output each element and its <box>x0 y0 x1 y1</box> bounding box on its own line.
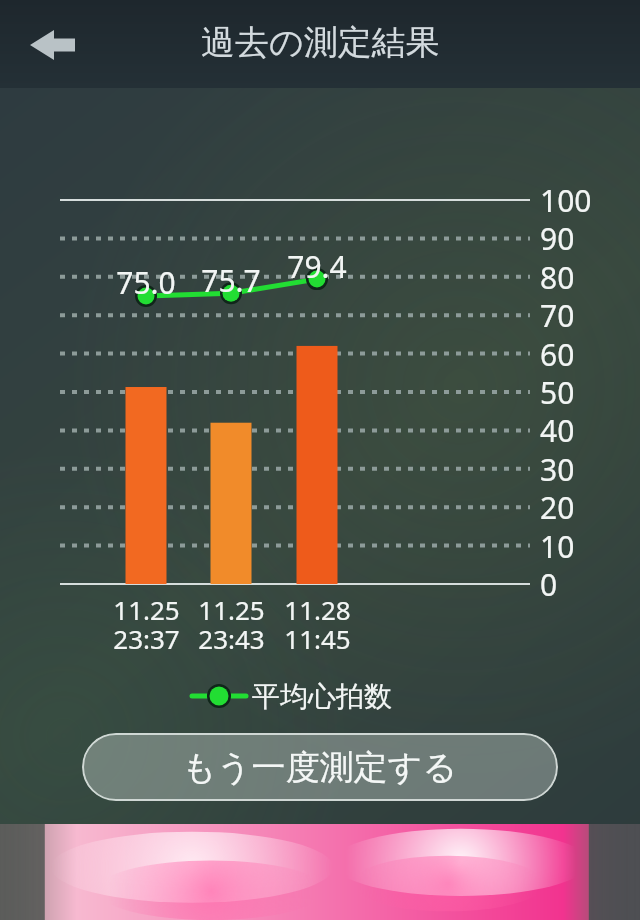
staticText: 過去の測定結果 <box>201 21 440 64</box>
staticText: 0 <box>540 564 558 604</box>
staticText: 40 <box>540 410 575 450</box>
staticText: 79.4 <box>287 246 347 287</box>
button[interactable]: もう一度測定する <box>82 733 558 801</box>
staticText: もう一度測定する <box>182 746 458 789</box>
staticText: 平均心拍数 <box>252 679 392 714</box>
staticText: 11.25 23:37 <box>113 592 180 656</box>
staticText: 75.0 <box>116 262 176 303</box>
staticText: 30 <box>540 449 575 489</box>
staticText: 100 <box>540 180 592 220</box>
staticText: 20 <box>540 487 575 527</box>
staticText: 50 <box>540 372 575 412</box>
staticText: 80 <box>540 257 575 297</box>
button[interactable]: Advertisement <box>0 824 640 920</box>
staticText: 11.28 11:45 <box>284 592 351 656</box>
staticText: 75.7 <box>201 260 261 301</box>
staticText: 70 <box>540 295 575 335</box>
staticText: 11.25 23:43 <box>198 592 265 656</box>
staticText: 90 <box>540 218 575 258</box>
button[interactable]: Back <box>12 14 92 76</box>
staticText: 10 <box>540 526 575 566</box>
staticText: 60 <box>540 334 575 374</box>
